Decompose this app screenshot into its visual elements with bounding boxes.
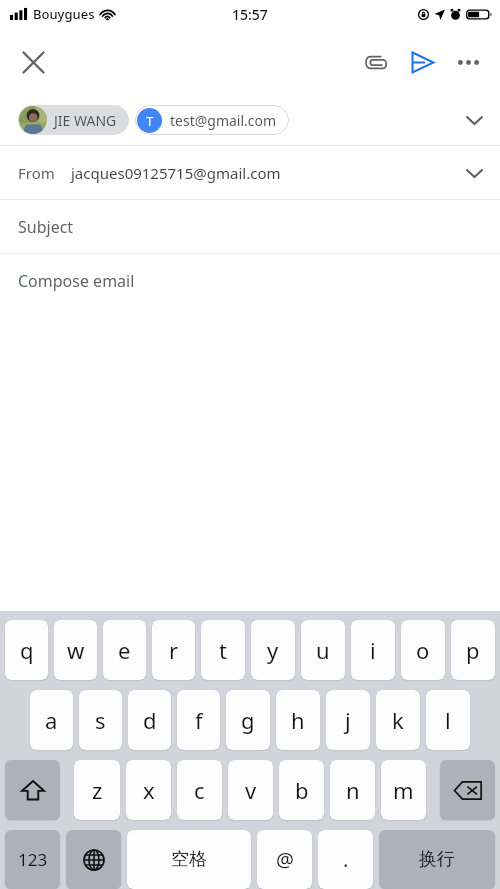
- button[interactable]: More options: [445, 39, 491, 85]
- staticText: c: [194, 775, 205, 805]
- staticText: t: [219, 635, 227, 665]
- button[interactable]: Compose email: [0, 254, 500, 308]
- button[interactable]: v: [228, 760, 273, 820]
- button[interactable]: 换行: [379, 830, 495, 889]
- button[interactable]: y: [251, 620, 295, 680]
- button[interactable]: u: [301, 620, 345, 680]
- button[interactable]: s: [79, 690, 122, 750]
- button[interactable]: z: [74, 760, 120, 820]
- staticText: 15:57: [232, 5, 268, 24]
- button[interactable]: h: [276, 690, 320, 750]
- button[interactable]: g: [226, 690, 270, 750]
- button[interactable]: .: [318, 830, 373, 889]
- button[interactable]: m: [381, 760, 426, 820]
- staticText: T: [146, 112, 154, 130]
- button[interactable]: l: [426, 690, 470, 750]
- staticText: e: [118, 635, 131, 665]
- button[interactable]: 123: [5, 830, 60, 889]
- staticText: n: [346, 775, 360, 805]
- button[interactable]: Send: [399, 39, 445, 85]
- staticText: .: [343, 846, 349, 873]
- staticText: l: [445, 705, 451, 735]
- staticText: JIE WANG: [54, 111, 117, 130]
- staticText: f: [195, 705, 203, 735]
- staticText: test@gmail.com: [170, 111, 277, 130]
- button[interactable]: Backspace: [440, 760, 495, 820]
- button[interactable]: w: [54, 620, 97, 680]
- button[interactable]: Attach file: [353, 39, 399, 85]
- staticText: Compose email: [18, 270, 135, 292]
- button[interactable]: i: [351, 620, 395, 680]
- button[interactable]: p: [451, 620, 495, 680]
- button[interactable]: x: [126, 760, 171, 820]
- staticText: q: [20, 635, 34, 665]
- staticText: h: [291, 705, 305, 735]
- staticText: p: [466, 635, 480, 665]
- staticText: u: [316, 635, 330, 665]
- staticText: 换行: [419, 848, 455, 871]
- staticText: v: [245, 775, 257, 805]
- staticText: Bouygues: [33, 5, 95, 23]
- button[interactable]: d: [128, 690, 171, 750]
- staticText: Subject: [18, 216, 74, 238]
- staticText: w: [67, 635, 85, 665]
- button[interactable]: JIE WANG: [18, 105, 129, 135]
- staticText: s: [95, 705, 106, 735]
- staticText: @: [276, 846, 294, 873]
- button[interactable]: e: [103, 620, 146, 680]
- button[interactable]: Close: [11, 40, 55, 84]
- staticText: b: [295, 775, 309, 805]
- button[interactable]: Shift: [5, 760, 60, 820]
- button[interactable]: f: [177, 690, 220, 750]
- staticText: 空格: [171, 848, 207, 871]
- staticText: z: [92, 775, 103, 805]
- button[interactable]: j: [326, 690, 370, 750]
- button[interactable]: Change sender: [452, 151, 496, 195]
- staticText: o: [416, 635, 430, 665]
- button[interactable]: b: [279, 760, 324, 820]
- staticText: i: [370, 635, 376, 665]
- button[interactable]: c: [177, 760, 222, 820]
- staticText: x: [143, 775, 155, 805]
- staticText: jacques09125715@gmail.com: [71, 163, 281, 183]
- button[interactable]: T: [135, 105, 289, 135]
- staticText: r: [169, 635, 179, 665]
- staticText: j: [345, 705, 351, 735]
- staticText: m: [393, 775, 414, 805]
- button[interactable]: r: [152, 620, 195, 680]
- button[interactable]: 空格: [127, 830, 251, 889]
- button[interactable]: t: [201, 620, 245, 680]
- staticText: From: [18, 163, 55, 183]
- staticText: a: [45, 705, 58, 735]
- button[interactable]: k: [376, 690, 420, 750]
- staticText: 123: [18, 848, 48, 871]
- button[interactable]: o: [401, 620, 445, 680]
- staticText: k: [392, 705, 404, 735]
- button[interactable]: Switch keyboard: [66, 830, 121, 889]
- staticText: d: [143, 705, 157, 735]
- button[interactable]: From: [0, 146, 500, 199]
- button[interactable]: JIE WANG: [0, 95, 500, 145]
- button[interactable]: a: [30, 690, 73, 750]
- button[interactable]: Subject: [0, 200, 500, 253]
- staticText: g: [241, 705, 255, 735]
- button[interactable]: q: [5, 620, 48, 680]
- button[interactable]: n: [330, 760, 375, 820]
- staticText: y: [267, 635, 279, 665]
- button[interactable]: @: [257, 830, 312, 889]
- button[interactable]: Expand recipients: [452, 98, 496, 142]
